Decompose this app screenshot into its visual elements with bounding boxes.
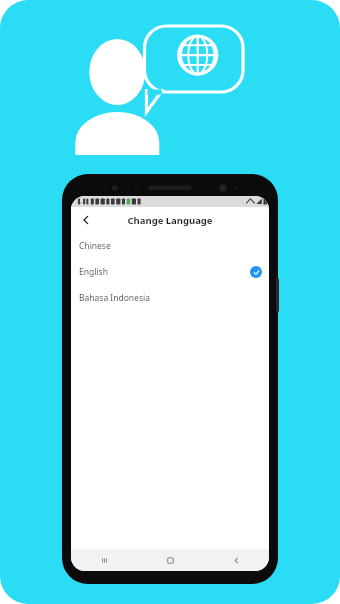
button[interactable]: Back: [203, 549, 269, 571]
button[interactable]: Recents: [71, 549, 137, 571]
button[interactable]: Home: [137, 549, 203, 571]
other: Selected: [250, 266, 262, 278]
staticText: Bahasa Indonesia: [79, 292, 262, 304]
button[interactable]: Chinese: [71, 233, 269, 259]
button[interactable]: English: [71, 259, 269, 285]
staticText: Change Language: [127, 214, 213, 227]
button[interactable]: Bahasa Indonesia: [71, 285, 269, 311]
staticText: Chinese: [79, 240, 262, 252]
button[interactable]: Back: [75, 209, 97, 231]
staticText: English: [79, 266, 250, 278]
